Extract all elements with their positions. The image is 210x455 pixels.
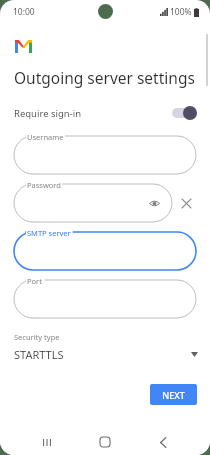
- staticText: NEXT: [162, 389, 185, 401]
- button[interactable]: Clear password: [177, 194, 195, 212]
- staticText: Require sign-in: [14, 107, 82, 120]
- button[interactable]: Show password: [146, 195, 162, 211]
- button[interactable]: Port: [14, 280, 196, 318]
- staticText: STARTTLS: [14, 347, 64, 362]
- button[interactable]: Require sign-in: [0, 102, 210, 124]
- button[interactable]: Security type: [0, 332, 210, 362]
- button[interactable]: NEXT: [150, 384, 197, 405]
- staticText: Username: [27, 132, 64, 142]
- staticText: Port: [27, 276, 42, 286]
- staticText: Security type: [14, 332, 60, 342]
- button[interactable]: Require sign-in toggle: [170, 105, 198, 121]
- button[interactable]: SMTP server: [14, 232, 196, 270]
- staticText: SMTP server: [27, 228, 71, 238]
- staticText: 100%: [170, 6, 192, 18]
- button[interactable]: Recent apps: [36, 431, 58, 453]
- button[interactable]: Password: [14, 184, 172, 222]
- staticText: Password: [27, 180, 61, 190]
- button[interactable]: Back: [152, 431, 174, 453]
- button[interactable]: Home: [94, 431, 116, 453]
- button[interactable]: Username: [14, 136, 196, 174]
- staticText: Outgoing server settings: [14, 67, 195, 88]
- staticText: 10:00: [13, 6, 35, 18]
